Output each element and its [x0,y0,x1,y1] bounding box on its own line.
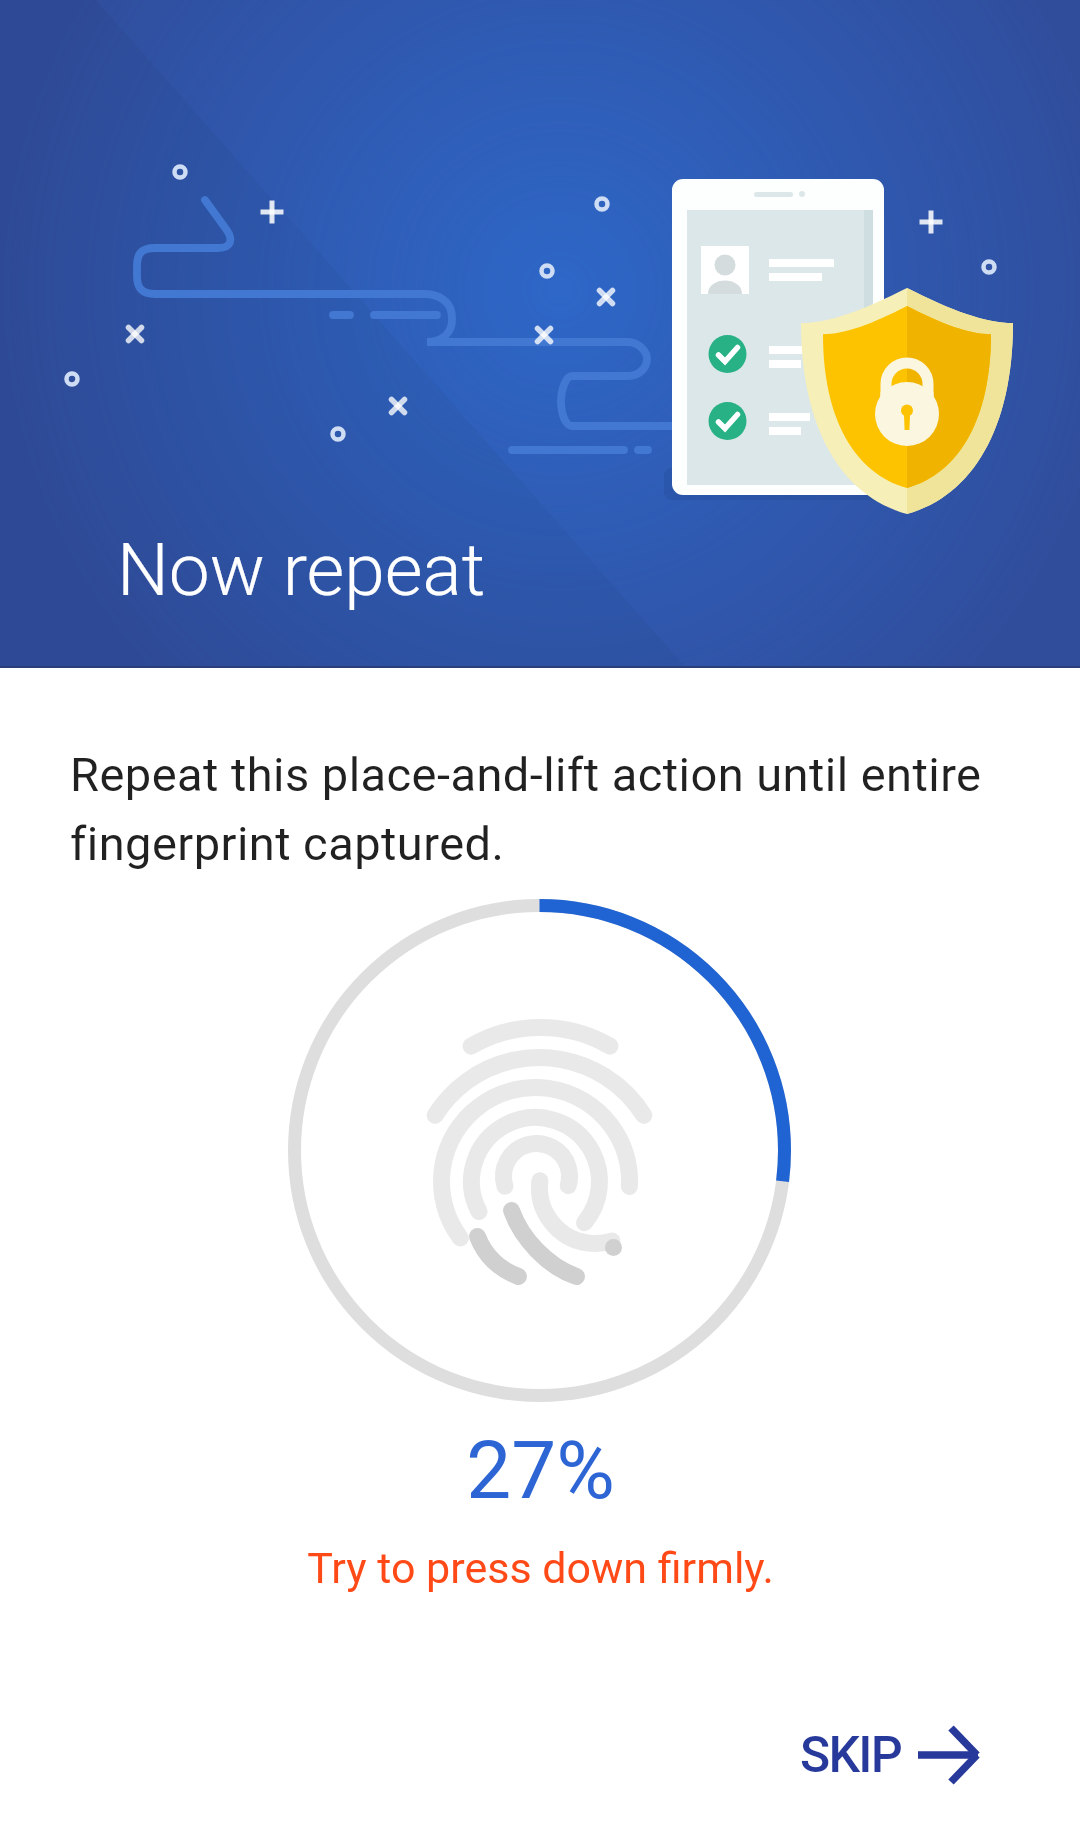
button[interactable]: Skip [762,1694,1020,1816]
staticText: SKIP [800,1726,902,1785]
staticText: Repeat this place-and-lift action until … [70,747,1010,872]
staticText: Try to press down firmly. [307,1543,774,1593]
staticText: Now repeat [117,527,486,613]
staticText: 27% [466,1424,615,1518]
